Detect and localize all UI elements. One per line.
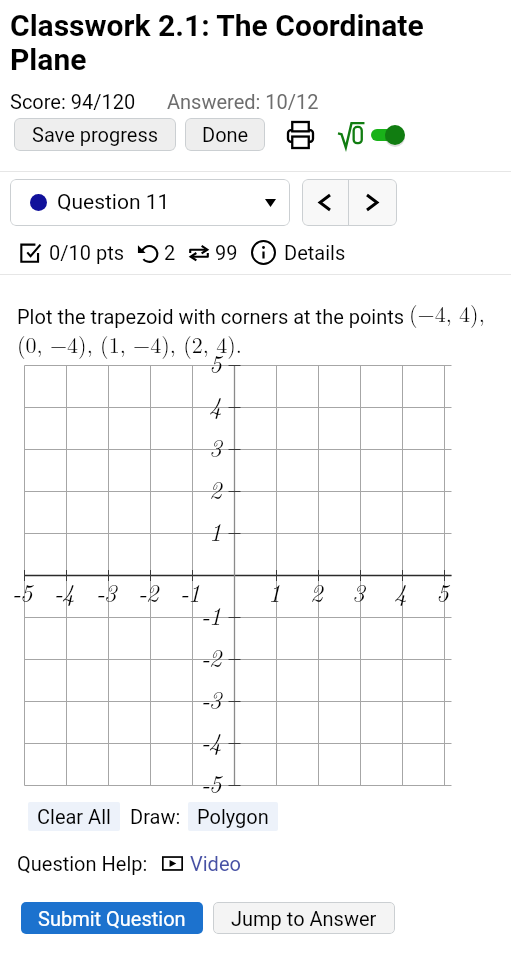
button[interactable]: Previous question (302, 179, 348, 226)
staticText: 3 (209, 429, 221, 464)
staticText: -1 (201, 597, 221, 632)
staticText: Answered: 10/12 (167, 90, 319, 113)
button[interactable]: Toggle math palette (338, 121, 407, 148)
staticText: Details (284, 241, 346, 264)
staticText: -1 (180, 574, 200, 609)
staticText: Draw: (130, 805, 181, 828)
staticText: Polygon (197, 805, 269, 828)
button[interactable]: Submit Question (21, 902, 203, 934)
staticText: Classwork 2.1: The Coordinate Plane (10, 8, 460, 77)
staticText: Score: 94/120 (10, 90, 136, 113)
staticText: -4 (54, 574, 74, 609)
staticText: Save progress (32, 123, 159, 146)
staticText: -5 (12, 574, 32, 609)
staticText: 99 (215, 241, 238, 264)
staticText: 5 (436, 574, 448, 609)
staticText: 0/10 pts (49, 241, 125, 264)
staticText: 5 (209, 345, 221, 380)
button[interactable]: Question 11 (10, 179, 290, 226)
staticText: Plot the trapezoid with corners at the p… (17, 305, 405, 328)
staticText: -2 (138, 574, 158, 609)
staticText: Clear All (37, 805, 111, 828)
staticText: -4 (201, 723, 221, 758)
staticText: -3 (96, 574, 116, 609)
button[interactable]: Video (162, 852, 241, 875)
button[interactable]: Print (288, 122, 313, 148)
staticText: Done (202, 123, 249, 146)
button[interactable]: Save progress (14, 118, 176, 151)
staticText: Question Help: (17, 852, 148, 875)
staticText: 3 (352, 574, 364, 609)
staticText: -5 (201, 765, 221, 800)
staticText: 1 (209, 513, 221, 548)
staticText: Video (190, 852, 241, 875)
staticText: 4 (394, 574, 406, 609)
button[interactable]: Next question (349, 179, 395, 226)
staticText: (0, −4), (1, −4), (2, 4). (17, 328, 242, 359)
staticText: -3 (201, 681, 221, 716)
staticText: Submit Question (38, 907, 186, 930)
staticText: Jump to Answer (231, 907, 377, 930)
staticText: 1 (268, 574, 280, 609)
staticText: 2 (209, 471, 221, 506)
staticText: 2 (310, 574, 322, 609)
staticText: -2 (201, 639, 221, 674)
staticText: Question 11 (57, 190, 170, 215)
staticText: 2 (164, 241, 176, 264)
button[interactable]: Polygon (188, 802, 278, 831)
button[interactable]: Jump to Answer (213, 902, 395, 934)
button[interactable]: Done (185, 118, 265, 151)
staticText: (−4, 4), (409, 297, 485, 328)
staticText: 4 (209, 387, 221, 422)
button[interactable]: Clear All (28, 802, 120, 831)
